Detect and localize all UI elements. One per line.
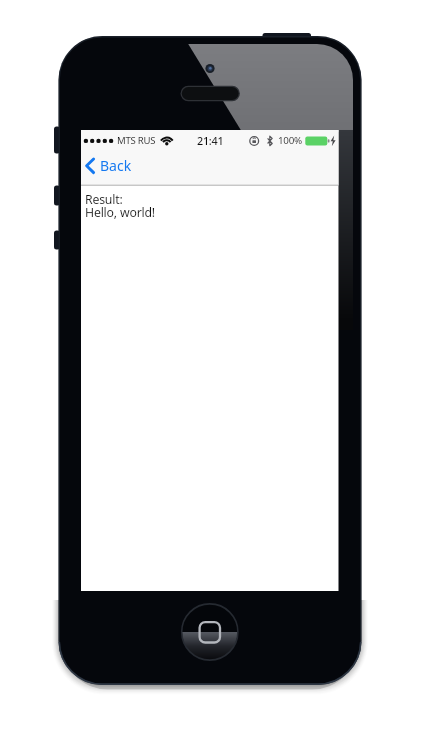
staticText: Result: bbox=[85, 191, 123, 208]
staticText: 100% bbox=[278, 134, 302, 147]
staticText: Hello, world! bbox=[85, 204, 155, 221]
staticText: Back bbox=[100, 156, 132, 175]
staticText: MTS RUS bbox=[117, 134, 156, 147]
staticText: 21:41 bbox=[197, 133, 224, 148]
button[interactable]: Back bbox=[83, 152, 147, 178]
